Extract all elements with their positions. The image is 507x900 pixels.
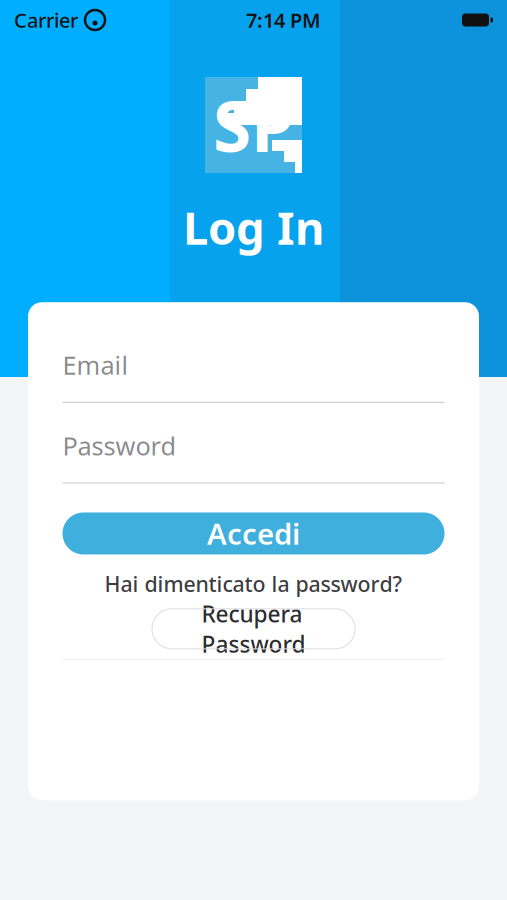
staticText: Log In [183, 197, 324, 257]
staticText: Carrier [14, 7, 78, 33]
staticText: 7:14 PM [246, 7, 321, 33]
button[interactable]: Recupera Password [152, 609, 355, 649]
staticText: Password [62, 429, 176, 462]
staticText: Email [62, 348, 128, 382]
staticText: Hai dimenticato la password? [104, 569, 402, 598]
button[interactable]: Accedi [62, 512, 444, 554]
staticText: SP [213, 79, 294, 171]
staticText: Accedi [207, 514, 300, 553]
staticText: Recupera Password [201, 599, 305, 659]
